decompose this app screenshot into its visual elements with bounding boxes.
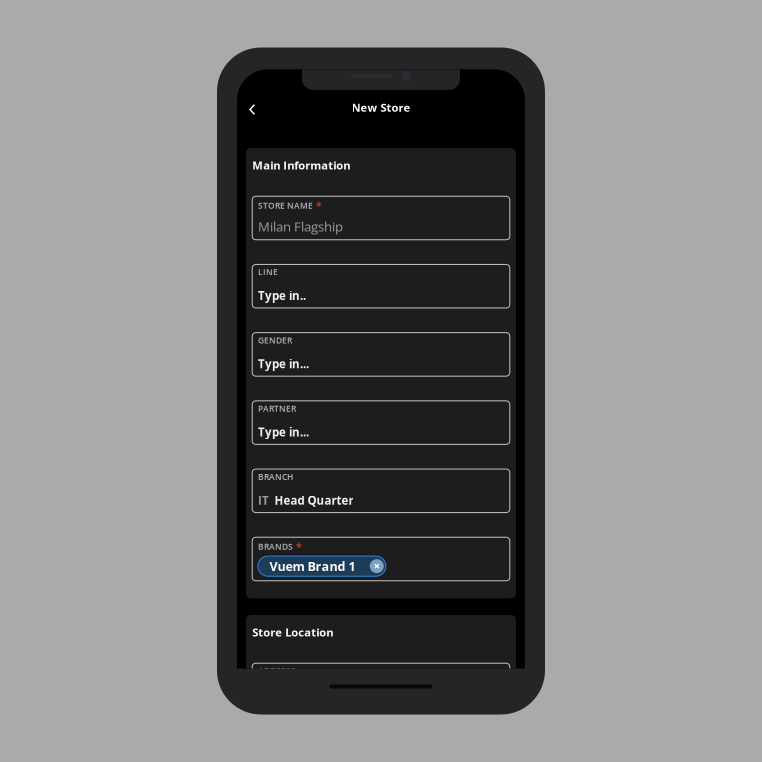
button[interactable]: PARTNER — [252, 401, 510, 444]
button[interactable]: ADDRESS — [252, 663, 510, 707]
staticText: STORE NAME — [258, 200, 313, 211]
button[interactable]: Back — [237, 90, 271, 124]
button[interactable]: GENDER — [252, 333, 510, 376]
staticText: BRANCH — [258, 471, 293, 482]
staticText: Type in.. — [258, 288, 306, 303]
staticText: New Store — [351, 100, 410, 115]
button[interactable]: LINE — [252, 264, 510, 308]
staticText: * — [316, 198, 322, 213]
staticText: Type in... — [258, 424, 309, 440]
staticText: Head Quarter — [274, 492, 353, 508]
staticText: Milan Flagship — [258, 217, 343, 235]
staticText: Type in... — [258, 356, 309, 372]
button[interactable]: BRANCH — [252, 469, 510, 513]
staticText: GENDER — [258, 335, 292, 346]
staticText: Store Location — [252, 624, 333, 640]
staticText: LINE — [258, 266, 278, 278]
staticText: ADDRESS — [258, 665, 296, 676]
staticText: Main Information — [252, 157, 350, 173]
staticText: IT — [258, 492, 269, 508]
staticText: Vuem Brand 1 — [269, 558, 355, 575]
button[interactable]: Remove Vuem Brand 1 — [370, 559, 386, 573]
staticText: * — [296, 539, 302, 554]
button[interactable]: BRANDS — [252, 537, 510, 581]
button[interactable]: STORE NAME — [252, 196, 510, 240]
staticText: PARTNER — [258, 403, 296, 414]
staticText: BRANDS — [258, 541, 293, 552]
